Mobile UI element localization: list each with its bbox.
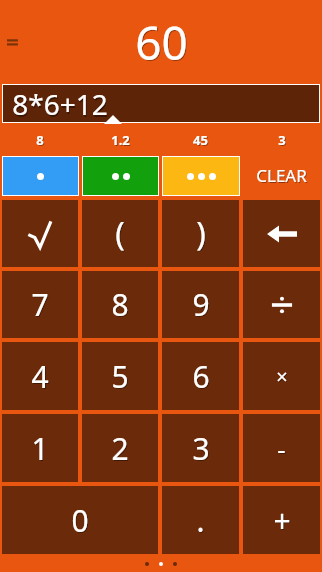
staticText: . xyxy=(196,500,205,541)
staticText: ) xyxy=(196,212,206,256)
staticText: CLEAR xyxy=(256,164,307,187)
staticText: 7 xyxy=(31,284,49,325)
staticText: - xyxy=(277,431,286,466)
staticText: 60 xyxy=(136,12,189,75)
staticText: 60 xyxy=(135,11,188,74)
button[interactable]: 45 xyxy=(160,126,241,154)
staticText: 8 xyxy=(112,285,130,326)
button[interactable]: 3 xyxy=(241,126,322,154)
staticText: 45 xyxy=(194,132,209,150)
staticText: + xyxy=(274,501,292,542)
staticText: 8 xyxy=(111,284,129,325)
staticText: ( xyxy=(115,212,125,256)
button[interactable]: 9 xyxy=(162,271,239,338)
staticText: 8*6+12 xyxy=(13,87,109,122)
button[interactable]: Mode two xyxy=(83,157,158,195)
button[interactable]: 1.2 xyxy=(80,126,160,154)
staticText: 3 xyxy=(192,428,210,469)
staticText: 3 xyxy=(279,132,287,150)
staticText: 2 xyxy=(112,429,130,470)
button[interactable]: ( xyxy=(82,200,158,267)
staticText: 2 xyxy=(111,428,129,469)
staticText: 6 xyxy=(193,357,211,398)
button[interactable]: Mode one xyxy=(3,157,78,195)
staticText: 9 xyxy=(193,285,211,326)
button[interactable]: 4 xyxy=(2,342,78,410)
staticText: 4 xyxy=(31,356,49,397)
staticText: 0 xyxy=(72,501,90,542)
staticText: 5 xyxy=(111,356,129,397)
staticText: 1.2 xyxy=(112,132,131,150)
staticText: - xyxy=(278,432,287,467)
staticText: 1.2 xyxy=(111,131,130,149)
staticText: 45 xyxy=(193,131,208,149)
button[interactable]: 8 xyxy=(82,271,158,338)
button[interactable]: 0 xyxy=(2,486,158,554)
button[interactable]: 1 xyxy=(2,414,78,482)
staticText: 4 xyxy=(32,357,50,398)
button[interactable]: Backspace xyxy=(243,200,320,267)
staticText: 8 xyxy=(37,132,45,150)
button[interactable]: 3 xyxy=(162,414,239,482)
staticText: 1 xyxy=(32,429,50,470)
staticText: 5 xyxy=(112,357,130,398)
staticText: 9 xyxy=(192,284,210,325)
staticText: × xyxy=(276,363,288,390)
button[interactable]: × xyxy=(243,342,320,410)
button[interactable]: 8*6+12 xyxy=(3,85,319,122)
staticText: 3 xyxy=(278,131,286,149)
staticText: 7 xyxy=(32,285,50,326)
button[interactable]: 5 xyxy=(82,342,158,410)
staticText: 3 xyxy=(193,429,211,470)
staticText: ( xyxy=(116,213,126,257)
button[interactable]: Divide xyxy=(243,271,320,338)
button[interactable]: 2 xyxy=(82,414,158,482)
staticText: 1 xyxy=(31,428,49,469)
button[interactable]: - xyxy=(243,414,320,482)
button[interactable]: Mode three xyxy=(163,157,239,195)
staticText: CLEAR xyxy=(257,165,308,188)
staticText: + xyxy=(273,500,291,541)
staticText: × xyxy=(277,364,289,391)
button[interactable]: . xyxy=(162,486,239,554)
staticText: ) xyxy=(197,213,207,257)
button[interactable]: + xyxy=(243,486,320,554)
button[interactable]: 8 xyxy=(0,126,80,154)
staticText: 8 xyxy=(36,131,44,149)
staticText: 0 xyxy=(71,500,89,541)
button[interactable]: CLEAR xyxy=(241,154,322,196)
staticText: . xyxy=(197,501,206,542)
button[interactable]: ) xyxy=(162,200,239,267)
staticText: 6 xyxy=(192,356,210,397)
button[interactable]: 7 xyxy=(2,271,78,338)
button[interactable]: 6 xyxy=(162,342,239,410)
staticText: 8*6+12 xyxy=(12,85,108,122)
button[interactable]: Square root xyxy=(2,200,78,267)
